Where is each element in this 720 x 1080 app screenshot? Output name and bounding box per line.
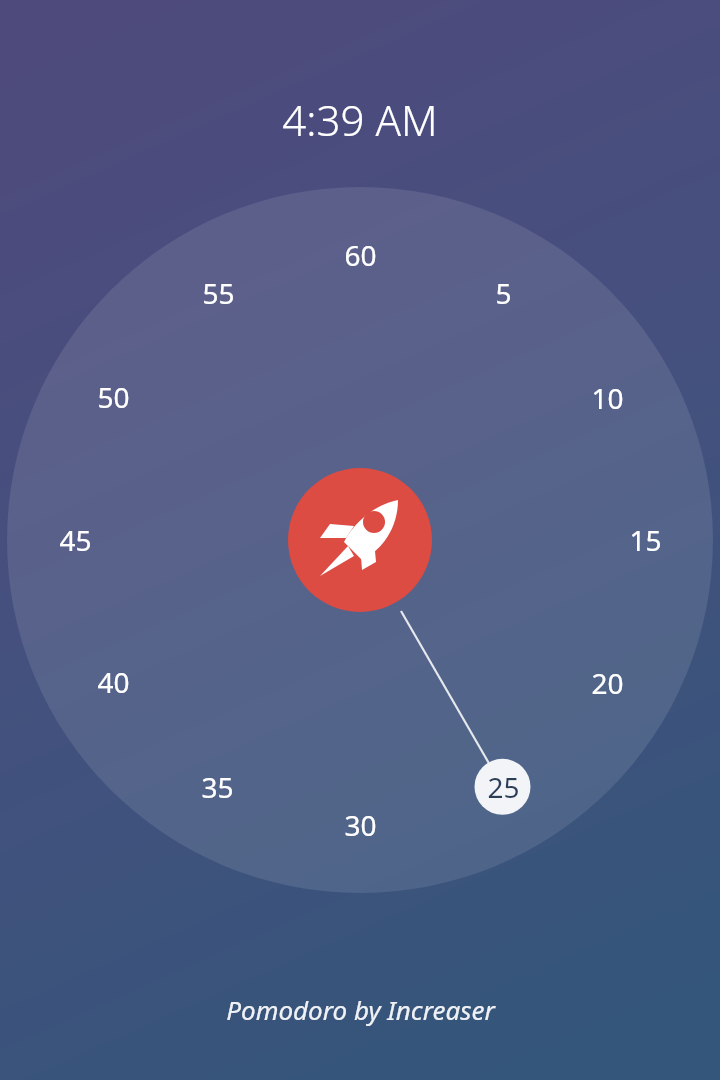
button[interactable]: 35 [186, 764, 248, 810]
staticText: 45 [59, 521, 92, 559]
button[interactable]: 30 [329, 802, 391, 848]
button[interactable]: 55 [187, 270, 249, 316]
staticText: 15 [629, 521, 662, 559]
staticText: Pomodoro by Increaser [226, 992, 495, 1027]
staticText: 25 [487, 768, 520, 806]
staticText: 55 [202, 274, 235, 312]
button[interactable]: 10 [576, 375, 638, 421]
staticText: 20 [591, 664, 624, 702]
button[interactable]: 60 [329, 232, 391, 278]
staticText: 5 [495, 274, 512, 312]
button[interactable]: 25 [472, 764, 534, 810]
button[interactable]: 50 [82, 374, 144, 420]
button[interactable]: Start Pomodoro [288, 468, 432, 612]
button[interactable]: 5 [472, 270, 534, 316]
staticText: 30 [344, 806, 377, 844]
button[interactable]: 45 [44, 517, 106, 563]
button[interactable]: 20 [576, 660, 638, 706]
button[interactable]: 15 [614, 517, 676, 563]
staticText: 4:39 AM [282, 91, 438, 148]
staticText: 40 [97, 663, 130, 701]
staticText: 50 [97, 378, 130, 416]
button[interactable]: 40 [82, 659, 144, 705]
staticText: 35 [201, 768, 234, 806]
staticText: 60 [344, 236, 377, 274]
staticText: 10 [591, 379, 624, 417]
